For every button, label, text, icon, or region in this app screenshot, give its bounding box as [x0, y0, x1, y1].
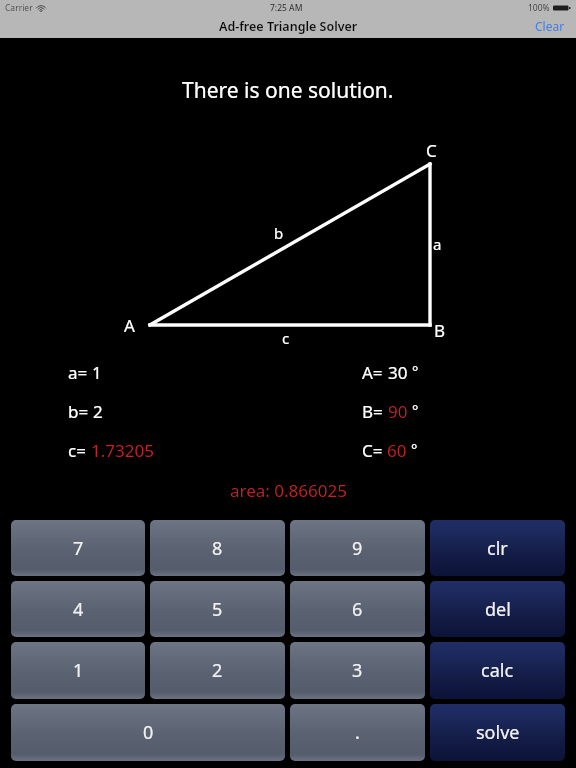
staticText: 1 — [92, 361, 102, 384]
staticText: Carrier — [5, 2, 33, 14]
staticText: 9 — [352, 536, 363, 561]
button[interactable]: . — [290, 704, 425, 761]
staticText: 1.73205 — [91, 439, 154, 462]
staticText: ° — [407, 439, 418, 459]
staticText: 100% — [528, 2, 550, 14]
button[interactable]: 2 — [150, 642, 285, 699]
staticText: calc — [481, 658, 514, 683]
staticText: . — [355, 720, 360, 745]
button[interactable]: Clear — [521, 15, 576, 38]
button[interactable]: clr — [430, 520, 565, 576]
button[interactable]: 3 — [290, 642, 425, 699]
staticText: 2 — [93, 400, 103, 423]
staticText: 4 — [73, 597, 84, 622]
staticText: ° — [408, 361, 419, 381]
staticText: 5 — [212, 597, 223, 622]
button[interactable]: 6 — [290, 581, 425, 637]
button[interactable]: solve — [430, 704, 565, 761]
staticText: ° — [408, 400, 419, 420]
staticText: Ad-free Triangle Solver — [219, 18, 358, 35]
button[interactable]: 4 — [11, 581, 145, 637]
staticText: area: 0.866025 — [230, 479, 347, 502]
button[interactable]: 5 — [150, 581, 285, 637]
staticText: 7 — [73, 536, 84, 561]
staticText: b= — [68, 400, 93, 423]
staticText: 0 — [143, 720, 154, 745]
staticText: b — [274, 223, 284, 243]
staticText: del — [485, 597, 511, 622]
button[interactable]: 7 — [11, 520, 145, 576]
staticText: c — [282, 328, 290, 348]
staticText: C= — [362, 439, 387, 462]
staticText: There is one solution. — [182, 76, 394, 105]
button[interactable]: calc — [430, 642, 565, 699]
button[interactable]: del — [430, 581, 565, 637]
staticText: B — [434, 319, 446, 342]
button[interactable]: 9 — [290, 520, 425, 576]
staticText: a — [433, 234, 442, 254]
button[interactable]: 0 — [11, 704, 285, 761]
staticText: A= — [362, 361, 388, 384]
button[interactable]: 1 — [11, 642, 145, 699]
staticText: 1 — [73, 658, 84, 683]
staticText: c= — [68, 439, 91, 462]
staticText: A — [124, 314, 135, 337]
staticText: a= — [68, 361, 92, 384]
staticText: clr — [487, 536, 508, 561]
staticText: 7:25 AM — [270, 2, 303, 14]
staticText: 60 — [387, 439, 407, 462]
staticText: solve — [476, 720, 520, 745]
staticText: 6 — [352, 597, 363, 622]
staticText: 3 — [352, 658, 363, 683]
staticText: 2 — [212, 658, 223, 683]
staticText: Clear — [535, 18, 565, 34]
staticText: B= — [362, 400, 388, 423]
staticText: C — [426, 139, 437, 162]
staticText: 8 — [212, 536, 223, 561]
staticText: 90 — [388, 400, 408, 423]
button[interactable]: 8 — [150, 520, 285, 576]
staticText: 30 — [388, 361, 408, 384]
